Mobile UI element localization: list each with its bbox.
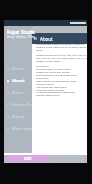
staticText: 4K video playing memory optimization [36,91,76,94]
staticText: mpg, mov, rm, rmvb, asf, mpeg, webm, ogv… [36,57,89,60]
staticText: Any Video Player [7,34,35,40]
staticText: Rating [12,114,25,120]
staticText: About [12,78,25,84]
staticText: More Apps [12,126,32,132]
staticText: About [40,36,53,42]
button[interactable]: Privacy Policy [4,99,32,111]
staticText: swipe brightness, take advantage of left [36,74,77,77]
staticText: Privacy Policy [12,102,32,108]
staticText: automatic search all media videos [36,68,71,71]
button[interactable]: Share [4,87,32,99]
staticText: supports all video player formats [36,71,70,74]
staticText: supports in-app mobile and its HD qualit… [36,46,87,49]
staticText: Key features: [36,65,50,68]
staticText: The application supports all format of v… [36,43,85,46]
staticText: Playback speed control [36,94,60,97]
staticText: Night mode with video effects [36,86,67,89]
staticText: smart memory, simple operation, quick [36,80,77,83]
staticText: EXIT [24,156,32,161]
staticText: supports in-app mobile. [36,60,61,63]
staticText: Share [12,90,23,96]
button[interactable]: Rating [4,111,32,123]
staticText: Home [12,66,24,72]
staticText: Rajat Studio [7,29,35,36]
staticText: Thumbnail display of videos [36,89,65,92]
button[interactable]: Open navigation drawer [32,35,39,42]
button[interactable]: EXIT [6,155,49,162]
staticText: Supported video formats: avi, mkv, mp4, … [36,54,87,57]
staticText: acceleration [36,77,49,80]
button[interactable]: About [4,75,32,87]
staticText: playback support [36,83,54,86]
button[interactable]: More Apps [4,123,32,135]
button[interactable]: Home [4,63,32,75]
staticText: device. [36,49,44,52]
